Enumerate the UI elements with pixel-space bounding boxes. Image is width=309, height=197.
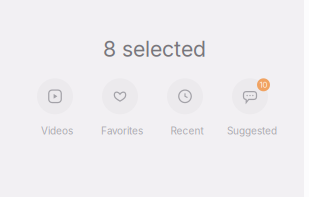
staticText: Videos [41, 125, 73, 137]
staticText: Favorites [101, 125, 143, 137]
button[interactable]: Recent [155, 73, 219, 137]
staticText: Recent [170, 125, 203, 137]
button[interactable]: 10 [220, 73, 284, 137]
button[interactable]: Favorites [90, 73, 154, 137]
staticText: Suggested [227, 125, 277, 137]
staticText: 10 [259, 80, 267, 90]
staticText: 8 selected [103, 36, 206, 62]
button[interactable]: Videos [25, 73, 89, 137]
